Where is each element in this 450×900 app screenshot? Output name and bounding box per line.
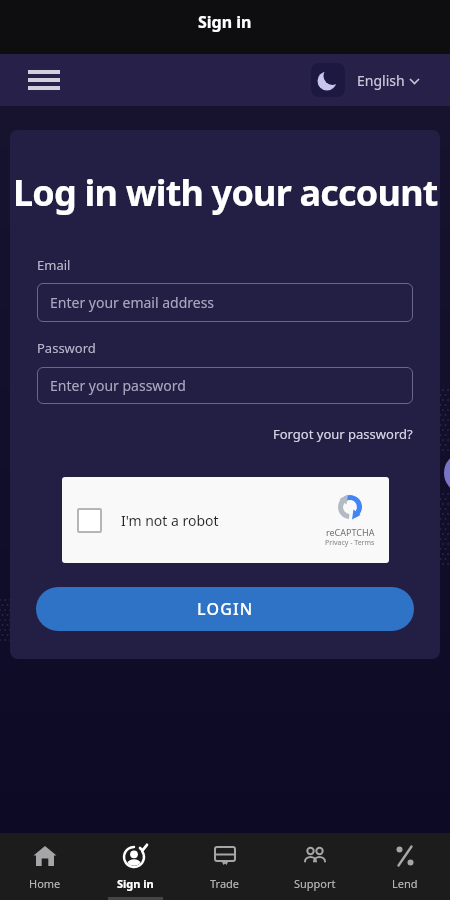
staticText: Support xyxy=(294,876,336,891)
button[interactable]: Support xyxy=(270,833,360,900)
button[interactable] xyxy=(311,63,345,97)
button[interactable]: Trade xyxy=(180,833,270,900)
button[interactable]: LOGIN xyxy=(36,587,414,631)
staticText: Home xyxy=(29,876,61,891)
button[interactable]: I'm not a robot xyxy=(62,477,389,563)
staticText: LOGIN xyxy=(197,598,254,620)
staticText: Email xyxy=(37,256,71,274)
staticText: Trade xyxy=(210,876,240,891)
button[interactable]: Lend xyxy=(360,833,450,900)
staticText: Privacy - Terms xyxy=(325,538,375,548)
button[interactable]: Sign in xyxy=(90,833,180,900)
staticText: Enter your password xyxy=(50,376,186,395)
button[interactable]: Forgot your password? xyxy=(273,425,413,443)
staticText: Lend xyxy=(392,876,418,891)
button[interactable] xyxy=(77,508,102,533)
staticText: Sign in xyxy=(117,876,154,891)
button[interactable]: Enter your password xyxy=(37,367,413,404)
staticText: I'm not a robot xyxy=(121,511,219,530)
button[interactable] xyxy=(28,66,60,94)
staticText: reCAPTCHA xyxy=(326,526,375,538)
button[interactable]: Home xyxy=(0,833,90,900)
staticText: English xyxy=(357,71,405,90)
button[interactable]: English xyxy=(357,71,420,90)
staticText: Password xyxy=(37,339,96,357)
staticText: Log in with your account xyxy=(13,168,438,217)
staticText: Sign in xyxy=(198,11,252,33)
staticText: Enter your email address xyxy=(50,293,215,312)
button[interactable]: Enter your email address xyxy=(37,283,413,322)
